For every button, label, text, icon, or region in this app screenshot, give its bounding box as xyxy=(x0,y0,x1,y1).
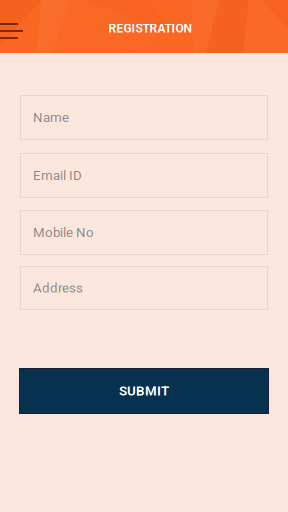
button[interactable]: Name xyxy=(20,95,268,140)
staticText: Address xyxy=(33,280,83,296)
staticText: SUBMIT xyxy=(119,383,169,399)
button[interactable]: Email ID xyxy=(20,153,268,198)
staticText: REGISTRATION xyxy=(108,21,191,36)
button[interactable]: Mobile No xyxy=(20,210,268,255)
staticText: Email ID xyxy=(33,168,82,183)
staticText: Mobile No xyxy=(33,225,94,240)
button[interactable]: SUBMIT xyxy=(19,368,269,414)
staticText: Name xyxy=(33,110,69,125)
button[interactable]: Menu xyxy=(0,16,34,46)
button[interactable]: Address xyxy=(20,266,268,310)
